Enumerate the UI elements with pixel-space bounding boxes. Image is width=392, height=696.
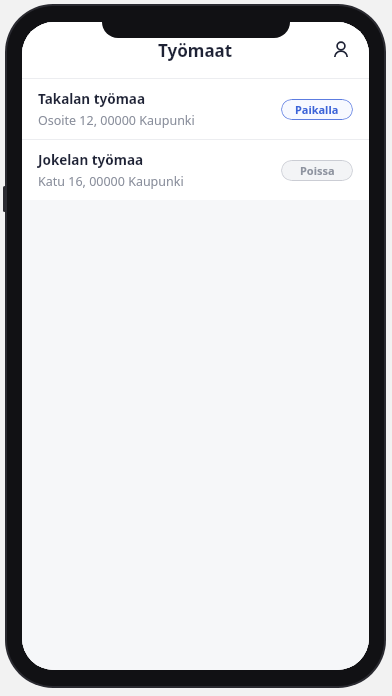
button[interactable]: Profile	[323, 32, 359, 68]
staticText: Osoite 12, 00000 Kaupunki	[38, 112, 195, 129]
button[interactable]: Työmaat	[148, 35, 243, 66]
staticText: Paikalla	[295, 102, 339, 117]
button[interactable]: Jokelan työmaa	[22, 140, 369, 200]
staticText: Työmaat	[158, 39, 233, 62]
staticText: Takalan työmaa	[38, 90, 145, 108]
staticText: Jokelan työmaa	[38, 151, 144, 169]
button[interactable]: Takalan työmaa	[22, 79, 369, 139]
staticText: Katu 16, 00000 Kaupunki	[38, 173, 184, 190]
button[interactable]: Poissa	[281, 160, 353, 181]
button[interactable]: Paikalla	[281, 99, 353, 120]
staticText: Poissa	[300, 163, 335, 178]
